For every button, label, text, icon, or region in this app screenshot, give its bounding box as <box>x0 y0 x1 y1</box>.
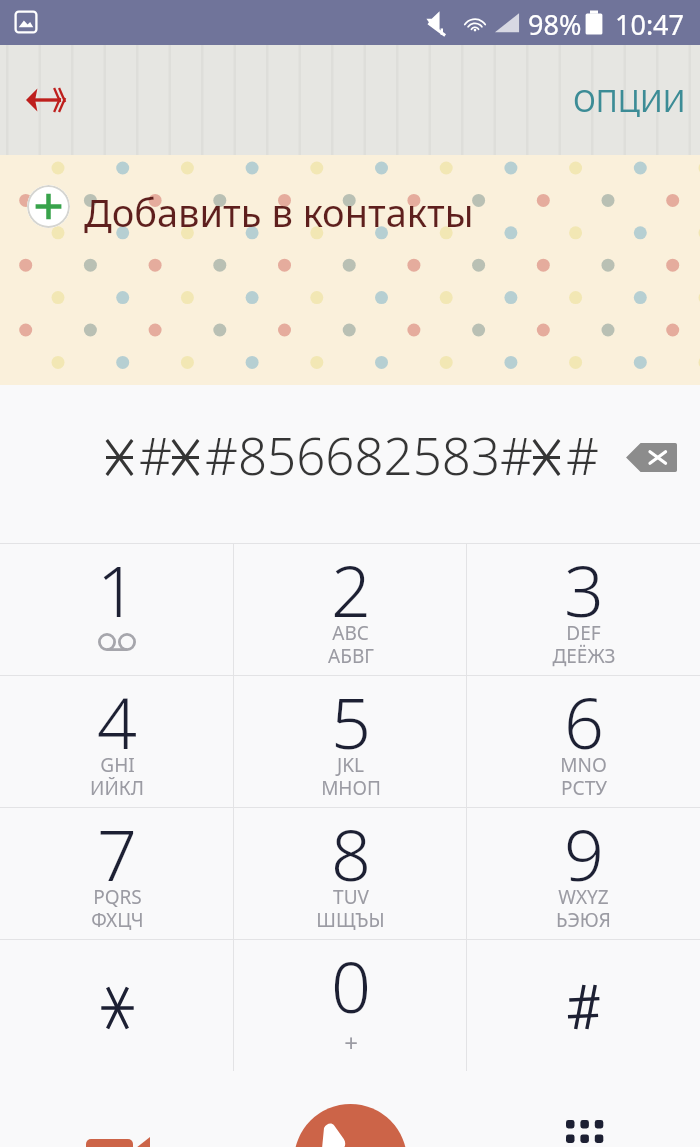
staticText: JKL <box>337 752 364 778</box>
button[interactable] <box>467 940 700 1071</box>
staticText: ДЕЁЖЗ <box>552 643 616 669</box>
button[interactable] <box>0 940 234 1071</box>
staticText: WXYZ <box>558 884 609 910</box>
staticText: ЬЭЮЯ <box>556 907 611 933</box>
staticText: MNO <box>560 752 607 778</box>
button[interactable]: 7 <box>0 808 234 939</box>
other: Add to contacts <box>27 185 70 228</box>
button[interactable]: Back <box>4 68 68 132</box>
staticText: + <box>344 1026 358 1059</box>
staticText: ШЩЪЫ <box>316 907 385 933</box>
staticText: GHI <box>100 752 135 778</box>
staticText: ОПЦИИ <box>573 80 686 121</box>
staticText: ABC <box>332 620 369 646</box>
button[interactable]: Video call <box>78 1126 140 1147</box>
button[interactable]: 3 <box>467 544 700 675</box>
staticText: 4 <box>97 674 137 769</box>
staticText: Добавить в контакты <box>84 186 474 238</box>
button[interactable]: 2 <box>234 544 467 675</box>
staticText: 10:47 <box>615 6 685 43</box>
staticText: #856682583# <box>205 420 533 489</box>
staticText: PQRS <box>93 884 142 910</box>
staticText: 3 <box>564 542 604 637</box>
button[interactable]: ОПЦИИ <box>555 66 700 135</box>
staticText: TUV <box>333 884 369 910</box>
staticText: 9 <box>564 806 604 901</box>
staticText: АБВГ <box>328 643 374 669</box>
button[interactable]: Keypad <box>560 1120 608 1147</box>
staticText: 1 <box>97 542 137 637</box>
staticText: 5 <box>331 674 371 769</box>
staticText: 0 <box>331 938 371 1033</box>
button[interactable]: Call <box>294 1104 407 1147</box>
button[interactable]: 9 <box>467 808 700 939</box>
staticText: 7 <box>97 806 137 901</box>
staticText: 98% <box>528 6 582 43</box>
staticText: 2 <box>331 542 371 637</box>
button[interactable]: 6 <box>467 676 700 807</box>
staticText: ИЙКЛ <box>90 775 144 801</box>
button[interactable]: 4 <box>0 676 234 807</box>
button[interactable]: Add to contacts <box>0 155 700 385</box>
staticText: DEF <box>566 620 601 646</box>
staticText: РСТУ <box>561 775 607 801</box>
staticText: # <box>566 420 599 489</box>
button[interactable]: 1 <box>0 544 234 675</box>
button[interactable]: Backspace <box>608 414 694 500</box>
button[interactable]: 5 <box>234 676 467 807</box>
button[interactable]: 8 <box>234 808 467 939</box>
staticText: 8 <box>331 806 371 901</box>
button[interactable]: 0 <box>234 940 467 1071</box>
staticText: МНОП <box>321 775 381 801</box>
staticText: 6 <box>564 674 604 769</box>
staticText: # <box>139 420 172 489</box>
staticText: ФХЦЧ <box>91 907 144 933</box>
